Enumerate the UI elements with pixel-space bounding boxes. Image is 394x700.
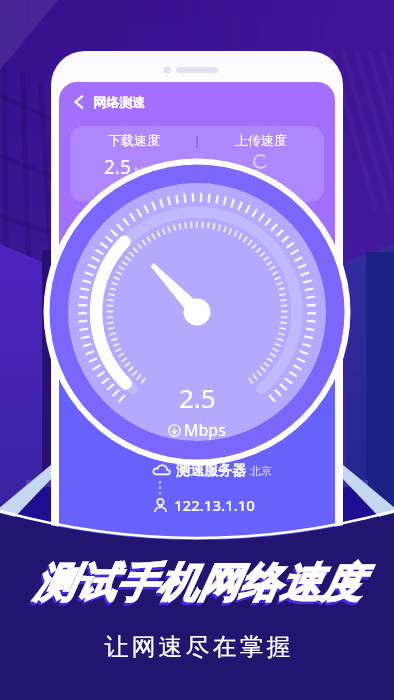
staticText: 北京 bbox=[250, 464, 272, 478]
staticText: 下载速度 bbox=[108, 132, 160, 148]
staticText: Mbps bbox=[184, 419, 226, 441]
staticText: 2.5 bbox=[104, 154, 131, 180]
button[interactable]: Back bbox=[68, 89, 145, 115]
staticText: 测试手机网络速度 bbox=[33, 558, 361, 610]
button[interactable]: Back bbox=[68, 91, 90, 113]
staticText: 网络测速 bbox=[93, 94, 145, 110]
staticText: 122.13.1.10 bbox=[174, 495, 255, 515]
staticText: 上传速度 bbox=[235, 132, 287, 148]
staticText: 2.5 bbox=[179, 380, 216, 415]
staticText: 延迟 12ms bbox=[109, 185, 158, 199]
staticText: 测速服务器 bbox=[176, 462, 246, 480]
staticText: Mbps bbox=[134, 163, 163, 178]
staticText: 让网速尽在掌握 bbox=[103, 632, 292, 662]
staticText: 丢包 0% bbox=[242, 176, 279, 190]
staticText: 测试手机网络速度 bbox=[31, 561, 359, 613]
